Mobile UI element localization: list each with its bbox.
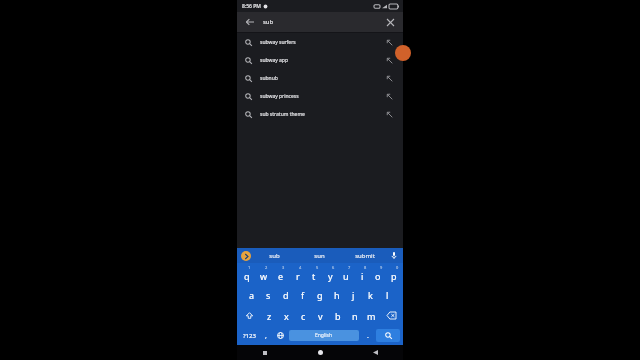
staticText: 9 [380,265,383,270]
button[interactable]: sun [297,248,342,263]
staticText: 0 [396,265,399,270]
button[interactable]: g [311,284,328,305]
staticText: subway surfers [260,39,383,46]
staticText: English [315,332,333,339]
button[interactable]: Clear search [383,15,397,29]
button[interactable]: Shift [238,305,261,326]
staticText: j [352,289,355,301]
staticText: i [361,270,364,282]
button[interactable]: c [295,305,312,326]
button[interactable]: Recent apps [237,345,293,360]
staticText: r [296,270,300,282]
staticText: g [317,289,323,301]
button[interactable]: ?123 [239,327,259,344]
button[interactable]: sub [251,248,297,263]
button[interactable]: n [346,305,363,326]
staticText: q [244,270,250,282]
staticText: b [335,310,341,322]
staticText: sub [263,18,274,26]
staticText: sub [269,252,280,260]
staticText: 8:56 PM [242,3,261,10]
staticText: 4 [299,265,302,270]
button[interactable]: Emoji [259,327,273,344]
button[interactable]: Insert suggestion [383,108,395,120]
button[interactable]: 3 [272,263,289,284]
button[interactable]: b [329,305,346,326]
button[interactable]: subway princess [237,87,403,105]
staticText: 1 [248,265,251,270]
button[interactable]: v [312,305,329,326]
button[interactable]: x [278,305,295,326]
button[interactable]: 2 [255,263,272,284]
staticText: u [343,270,349,282]
staticText: k [368,289,373,301]
button[interactable]: 5 [306,263,322,284]
button[interactable]: Insert suggestion [383,72,395,84]
button[interactable]: k [362,284,379,305]
button[interactable]: sub [263,12,383,32]
button[interactable]: 7 [338,263,354,284]
button[interactable]: subway app [237,51,403,69]
button[interactable]: d [277,284,294,305]
staticText: sub stratum theme [260,111,383,118]
staticText: v [318,310,323,322]
staticText: 3 [282,265,285,270]
button[interactable]: subway surfers [237,33,403,51]
staticText: w [260,270,268,282]
button[interactable]: submit [342,248,387,263]
button[interactable]: s [260,284,277,305]
button[interactable]: 4 [289,263,306,284]
button[interactable]: 0 [386,263,402,284]
staticText: 6 [332,265,335,270]
button[interactable]: m [363,305,380,326]
button[interactable]: j [345,284,362,305]
staticText: f [301,289,305,301]
staticText: 8 [364,265,367,270]
staticText: , [265,331,267,341]
staticText: subnub [260,75,383,82]
staticText: submit [355,252,375,260]
button[interactable]: 9 [370,263,386,284]
button[interactable]: Back [348,345,403,360]
button[interactable]: Insert suggestion [383,54,395,66]
staticText: s [266,289,271,301]
button[interactable]: Change language [273,327,287,344]
staticText: . [367,331,369,341]
button[interactable]: 1 [238,263,255,284]
staticText: 7 [348,265,351,270]
staticText: d [283,289,289,301]
staticText: y [328,270,333,282]
staticText: h [334,289,340,301]
button[interactable]: 8 [354,263,370,284]
button[interactable]: 6 [322,263,338,284]
button[interactable]: l [379,284,396,305]
button[interactable]: subnub [237,69,403,87]
button[interactable]: Insert suggestion [383,36,395,48]
staticText: ?123 [243,332,256,340]
staticText: n [352,310,358,322]
button[interactable]: sub stratum theme [237,105,403,123]
staticText: a [249,289,255,301]
staticText: c [301,310,306,322]
button[interactable]: Expand suggestions [241,251,251,261]
button[interactable]: Insert suggestion [383,90,395,102]
button[interactable]: Voice input [387,248,401,263]
button[interactable]: Backspace [380,305,402,326]
button[interactable]: . [361,327,375,344]
button[interactable]: Search [376,329,400,342]
staticText: p [391,270,397,282]
button[interactable]: English [289,330,359,341]
staticText: 5 [316,265,319,270]
staticText: l [386,289,389,301]
staticText: subway princess [260,93,383,100]
staticText: sun [314,252,325,260]
button[interactable]: f [294,284,311,305]
button[interactable]: h [328,284,345,305]
button[interactable]: Back [243,15,257,29]
button[interactable]: a [244,284,260,305]
staticText: e [278,270,284,282]
button[interactable]: Home [293,345,348,360]
staticText: subway app [260,57,383,64]
button[interactable]: z [261,305,278,326]
staticText: x [284,310,289,322]
